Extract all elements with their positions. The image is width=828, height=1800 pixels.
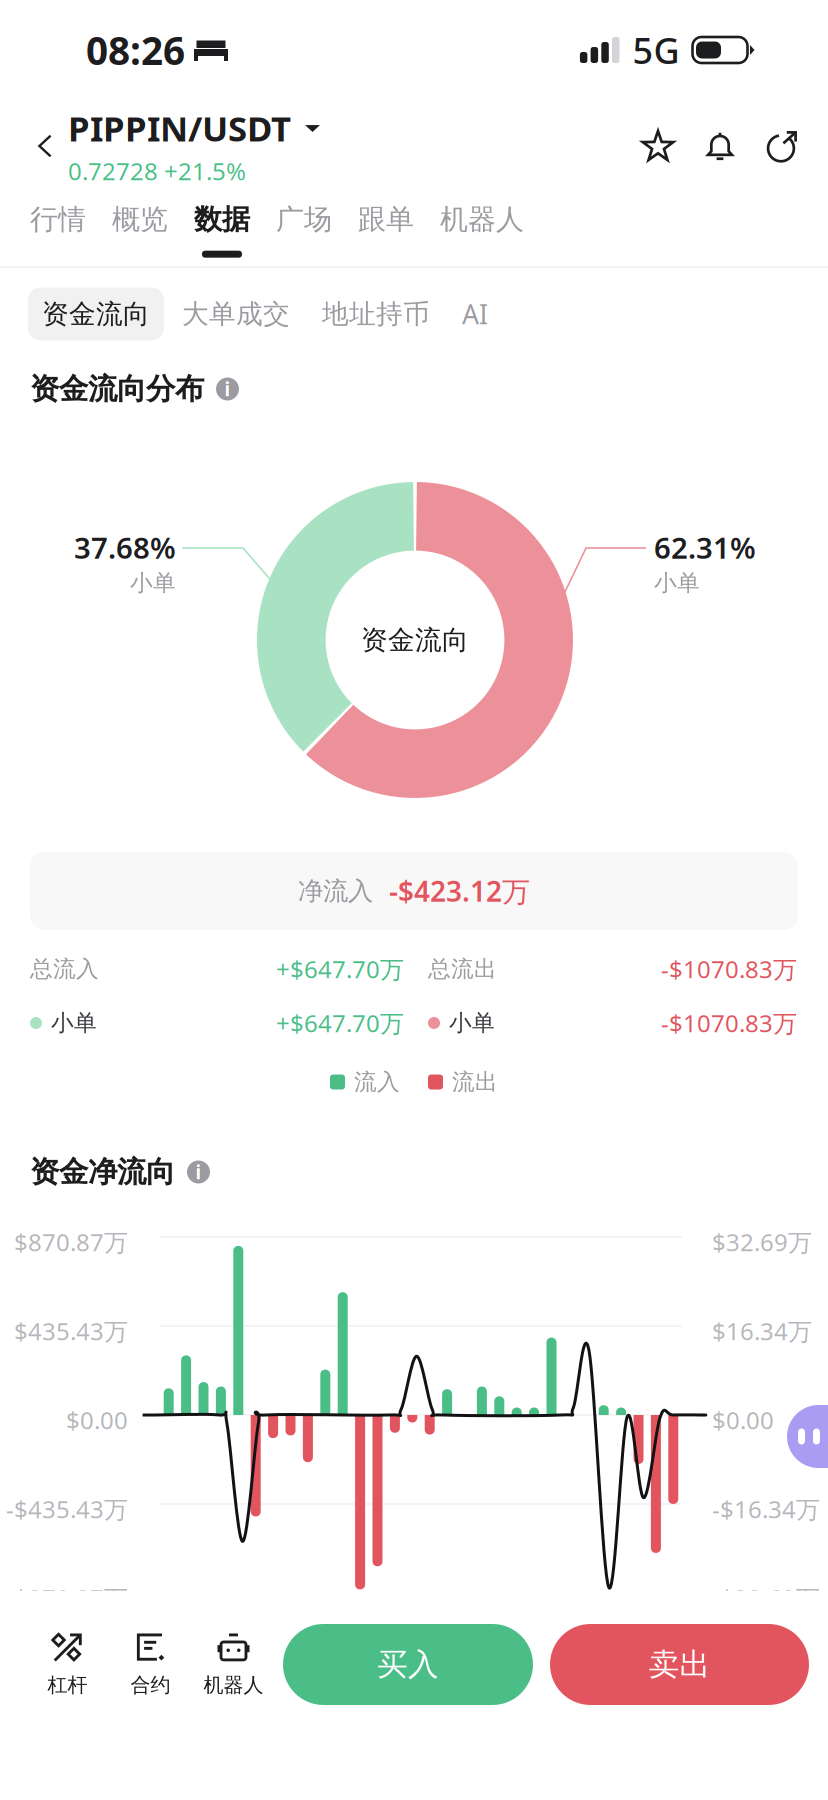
staticText: 行情 bbox=[30, 202, 86, 237]
staticText: 小单 bbox=[654, 569, 700, 597]
button[interactable]: 行情 bbox=[17, 195, 99, 265]
staticText: 资金流向 bbox=[42, 298, 150, 330]
staticText: 62.31% bbox=[654, 528, 756, 567]
staticText: 杠杆 bbox=[47, 1673, 87, 1697]
staticText: -$32.69万 bbox=[712, 1582, 820, 1614]
button[interactable]: 地址持币 bbox=[308, 288, 444, 340]
staticText: 资金流向分布 bbox=[30, 371, 204, 407]
staticText: -$435.43万 bbox=[6, 1493, 128, 1525]
staticText: 流出 bbox=[452, 1068, 498, 1096]
staticText: 合约 bbox=[130, 1673, 170, 1697]
staticText: 资金净流向 bbox=[30, 1154, 175, 1190]
staticText: 机器人 bbox=[440, 202, 524, 237]
staticText: 08:26 bbox=[86, 24, 185, 76]
staticText: $0.00 bbox=[712, 1404, 774, 1436]
button[interactable]: 跟单 bbox=[345, 195, 427, 265]
staticText: AI bbox=[462, 296, 488, 332]
button[interactable]: 卖出 bbox=[550, 1624, 809, 1705]
staticText: 总流入 bbox=[30, 955, 99, 983]
staticText: 总流出 bbox=[428, 955, 497, 983]
staticText: +$647.70万 bbox=[276, 1007, 404, 1039]
button[interactable]: 合约 bbox=[109, 1624, 192, 1705]
staticText: 小单 bbox=[130, 569, 176, 597]
button[interactable]: 大单成交 bbox=[168, 288, 304, 340]
staticText: $870.87万 bbox=[14, 1226, 128, 1258]
button[interactable]: 买入 bbox=[283, 1624, 533, 1705]
staticText: -$423.12万 bbox=[389, 872, 530, 910]
staticText: +$647.70万 bbox=[276, 953, 404, 985]
button[interactable]: 机器人 bbox=[427, 195, 537, 265]
staticText: 跟单 bbox=[358, 202, 414, 237]
button[interactable]: 概览 bbox=[99, 195, 181, 265]
staticText: 概览 bbox=[112, 202, 168, 237]
button[interactable]: 资金流向 bbox=[28, 288, 164, 340]
button[interactable]: 杠杆 bbox=[26, 1624, 109, 1705]
staticText: 地址持币 bbox=[322, 298, 430, 330]
staticText: 卖出 bbox=[648, 1646, 710, 1683]
button[interactable]: Back bbox=[22, 116, 68, 176]
staticText: 小单 bbox=[449, 1009, 495, 1037]
staticText: -$870.87万 bbox=[6, 1582, 128, 1614]
staticText: $32.69万 bbox=[712, 1226, 812, 1258]
staticText: i bbox=[224, 377, 230, 401]
button[interactable]: Assistant bbox=[787, 1405, 828, 1468]
staticText: 5G bbox=[632, 26, 679, 74]
staticText: 大单成交 bbox=[182, 298, 290, 330]
staticText: 数据 bbox=[194, 202, 250, 237]
button[interactable]: 广场 bbox=[263, 195, 345, 265]
staticText: i bbox=[195, 1160, 201, 1184]
button[interactable]: 机器人 bbox=[192, 1624, 275, 1705]
button[interactable]: Price alert bbox=[696, 116, 744, 176]
button[interactable]: 数据 bbox=[181, 195, 263, 265]
staticText: -$1070.83万 bbox=[661, 953, 797, 985]
staticText: 买入 bbox=[377, 1646, 439, 1683]
staticText: $16.34万 bbox=[712, 1315, 812, 1347]
staticText: 资金流向 bbox=[361, 624, 469, 656]
staticText: -$16.34万 bbox=[712, 1493, 820, 1525]
staticText: 37.68% bbox=[74, 528, 176, 567]
staticText: -$1070.83万 bbox=[661, 1007, 797, 1039]
staticText: 机器人 bbox=[203, 1673, 263, 1697]
staticText: 净流入 bbox=[298, 875, 373, 906]
staticText: 广场 bbox=[276, 202, 332, 237]
button[interactable]: AI bbox=[448, 286, 502, 342]
button[interactable]: Share bbox=[758, 116, 806, 176]
staticText: $435.43万 bbox=[14, 1315, 128, 1347]
button[interactable]: Favorite bbox=[634, 116, 682, 176]
staticText: 流入 bbox=[354, 1068, 400, 1096]
staticText: $0.00 bbox=[66, 1404, 128, 1436]
staticText: 0.72728 +21.5% bbox=[68, 155, 246, 187]
staticText: 小单 bbox=[51, 1009, 97, 1037]
staticText: PIPPIN/USDT bbox=[68, 105, 291, 151]
